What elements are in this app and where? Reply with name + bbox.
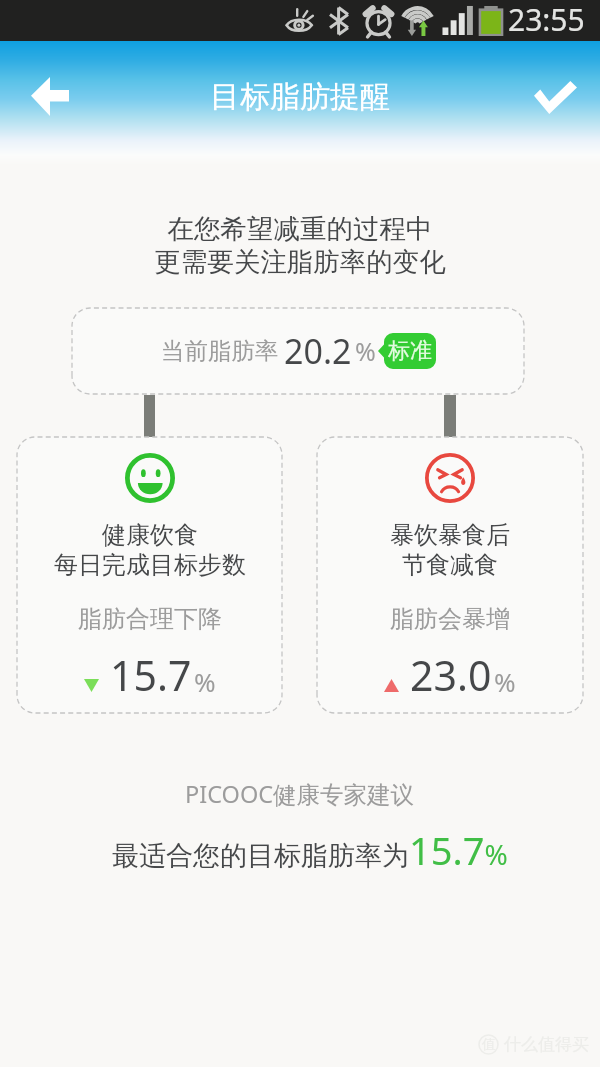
staticText: 值: [482, 1036, 496, 1054]
staticText: 暴饮暴食后 节食减食: [390, 520, 510, 581]
staticText: %: [194, 664, 216, 699]
staticText: 脂肪合理下降: [78, 604, 222, 634]
staticText: 20.2: [284, 328, 352, 374]
staticText: 最适合您的目标脂肪率为15.7%: [112, 824, 508, 876]
staticText: 目标脂肪提醒: [210, 78, 390, 116]
staticText: 健康饮食 每日完成目标步数: [54, 520, 246, 581]
staticText: 什么值得买: [504, 1034, 589, 1055]
staticText: 标准: [388, 337, 432, 365]
staticText: PICOOC健康专家建议: [185, 778, 415, 810]
staticText: %: [355, 334, 376, 368]
staticText: 23.0: [410, 647, 492, 703]
staticText: 脂肪会暴增: [390, 604, 510, 634]
staticText: 23:55: [508, 0, 585, 40]
staticText: 15.7: [110, 647, 192, 703]
staticText: 当前脂肪率: [161, 336, 279, 366]
staticText: 在您希望减重的过程中 更需要关注脂肪率的变化: [0, 212, 600, 279]
button[interactable]: Confirm: [512, 59, 598, 135]
button[interactable]: Back: [4, 58, 96, 134]
staticText: %: [494, 664, 516, 699]
